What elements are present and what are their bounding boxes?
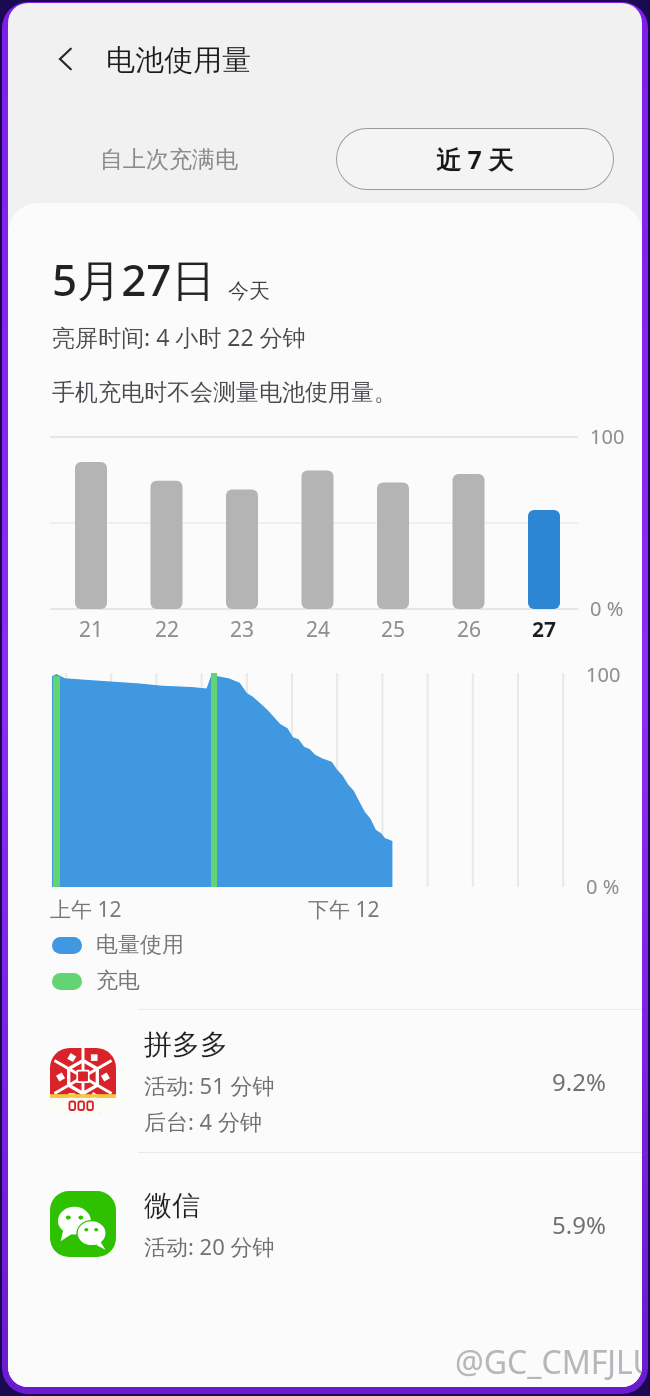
button[interactable]: 微信 <box>8 1153 642 1295</box>
staticText: 0 % <box>586 873 620 900</box>
staticText: 9.2% <box>552 1065 606 1098</box>
staticText: 亮屏时间: 4 小时 22 分钟 <box>52 321 306 352</box>
button[interactable]: Back <box>38 31 94 87</box>
staticText: 23 <box>230 615 255 644</box>
staticText: 活动: 20 分钟 <box>144 1231 275 1261</box>
staticText: 活动: 51 分钟 <box>144 1070 275 1100</box>
staticText: 26 <box>457 615 482 644</box>
staticText: 电池使用量 <box>106 42 251 79</box>
staticText: 电量使用 <box>96 931 184 959</box>
staticText: 手机充电时不会测量电池使用量。 <box>52 378 397 407</box>
button[interactable]: 自上次充满电 <box>86 135 252 184</box>
staticText: 100 <box>590 423 625 450</box>
staticText: 拼多多 <box>144 1027 228 1062</box>
staticText: 近 7 天 <box>436 142 514 176</box>
button[interactable]: 近 7 天 <box>336 128 614 190</box>
staticText: 上午 12 <box>50 895 122 924</box>
staticText: 自上次充满电 <box>100 145 238 174</box>
staticText: @GC_CMFJLU9M <box>455 1340 642 1384</box>
staticText: 今天 <box>228 278 270 304</box>
staticText: 25 <box>381 615 406 644</box>
staticText: 后台: 4 分钟 <box>144 1106 262 1136</box>
staticText: 27 <box>532 615 557 644</box>
staticText: 5月27日 <box>52 249 216 309</box>
button[interactable]: 拼多多 <box>8 1010 642 1152</box>
staticText: 5.9% <box>552 1208 606 1241</box>
staticText: 22 <box>155 615 180 644</box>
staticText: 24 <box>306 615 331 644</box>
staticText: 下午 12 <box>308 895 380 924</box>
staticText: 充电 <box>96 967 140 995</box>
staticText: 100 <box>586 661 621 688</box>
staticText: 微信 <box>144 1188 200 1223</box>
staticText: 21 <box>79 615 104 644</box>
staticText: 0 % <box>590 595 624 622</box>
